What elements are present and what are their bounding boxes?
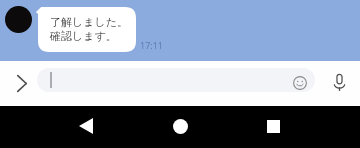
button[interactable]: Voice message: [327, 70, 351, 94]
button[interactable]: Recent apps: [253, 106, 293, 146]
button[interactable]: Profile picture: [5, 6, 32, 33]
staticText: 確認します。: [50, 29, 117, 43]
staticText: 了解しました。: [50, 15, 129, 29]
button[interactable]: Expand menu: [9, 70, 35, 96]
button[interactable]: [37, 68, 315, 92]
staticText: 17:11: [140, 39, 164, 51]
button[interactable]: Back: [66, 106, 106, 146]
button[interactable]: Emoji: [288, 71, 312, 95]
button[interactable]: Home: [160, 106, 200, 146]
button[interactable]: 了解しました。: [36, 6, 136, 52]
